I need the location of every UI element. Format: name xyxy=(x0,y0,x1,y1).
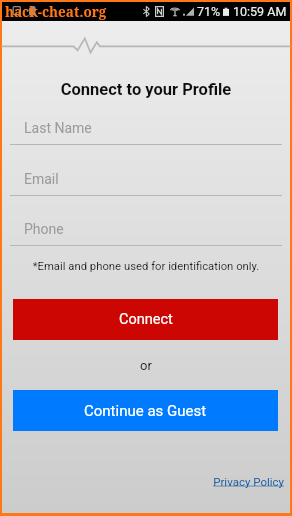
staticText: hack-cheat.org xyxy=(5,3,107,21)
staticText: *Email and phone used for identification… xyxy=(2,260,290,273)
staticText: Last Name xyxy=(24,120,92,136)
button[interactable]: Email xyxy=(2,164,290,196)
staticText: Continue as Guest xyxy=(84,402,207,420)
button[interactable]: Last Name xyxy=(2,113,290,145)
staticText: Email xyxy=(24,171,59,187)
staticText: or xyxy=(2,358,290,373)
staticText: Connect to your Profile xyxy=(2,80,290,99)
staticText: 10:59 AM xyxy=(233,4,287,19)
button[interactable]: Connect xyxy=(13,299,278,340)
staticText: Connect xyxy=(119,311,173,328)
button[interactable]: Phone xyxy=(2,214,290,246)
staticText: 71% xyxy=(197,4,221,19)
button[interactable]: Continue as Guest xyxy=(13,390,278,431)
staticText: Phone xyxy=(24,221,64,237)
button[interactable]: Privacy Policy xyxy=(2,475,284,488)
